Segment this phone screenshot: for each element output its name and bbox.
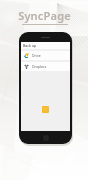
button[interactable]: Open folder: [42, 106, 49, 113]
staticText: SyncPage: [18, 8, 71, 23]
button[interactable]: Home: [43, 135, 49, 141]
button[interactable]: Drive: [21, 51, 70, 60]
staticText: Drive: [32, 53, 41, 58]
button[interactable]: Back up: [21, 42, 70, 49]
staticText: Dropbox: [32, 64, 47, 69]
button[interactable]: Dropbox: [21, 62, 70, 71]
staticText: Back up: [23, 43, 37, 48]
